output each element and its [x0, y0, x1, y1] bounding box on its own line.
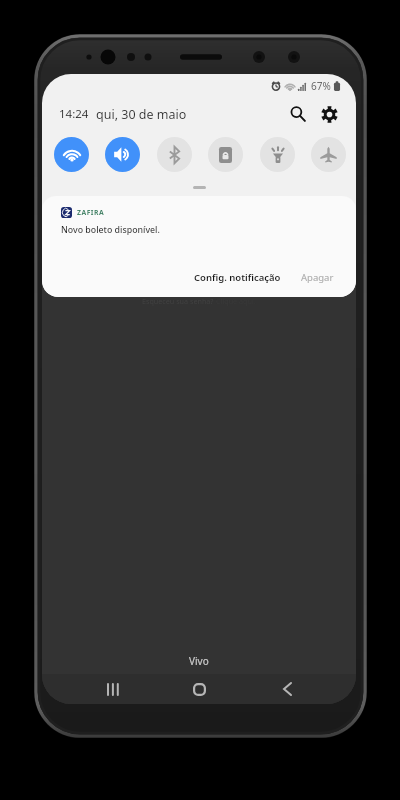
staticText: Novo boleto disponível.	[61, 224, 160, 236]
staticText: Vivo	[189, 654, 209, 668]
button[interactable]: Apagar	[295, 267, 340, 288]
button[interactable]: Sound	[105, 137, 140, 172]
staticText: Esqueceu sua senha?	[142, 296, 216, 306]
button[interactable]: Home	[177, 674, 222, 704]
staticText: Apagar	[301, 271, 334, 284]
staticText: 67%	[311, 79, 331, 93]
staticText: ZAFIRA	[77, 208, 105, 217]
button[interactable]: Flashlight	[260, 137, 295, 172]
button[interactable]: Bluetooth	[157, 137, 192, 172]
button[interactable]: Recents	[90, 674, 135, 704]
staticText: 14:24	[59, 106, 89, 122]
button[interactable]: Auto rotate	[208, 137, 243, 172]
button[interactable]: Wi-Fi	[54, 137, 89, 172]
button[interactable]: Search	[284, 100, 312, 128]
button[interactable]: Back	[265, 674, 310, 704]
staticText: Config. notificação	[194, 271, 281, 284]
button[interactable]: Settings	[315, 100, 343, 128]
button[interactable]: Config. notificação	[188, 267, 287, 288]
button[interactable]: Airplane mode	[311, 137, 346, 172]
button[interactable]: ZAFIRA	[42, 196, 356, 297]
staticText: Clique aqui.	[216, 296, 256, 306]
staticText: qui, 30 de maio	[96, 106, 187, 123]
